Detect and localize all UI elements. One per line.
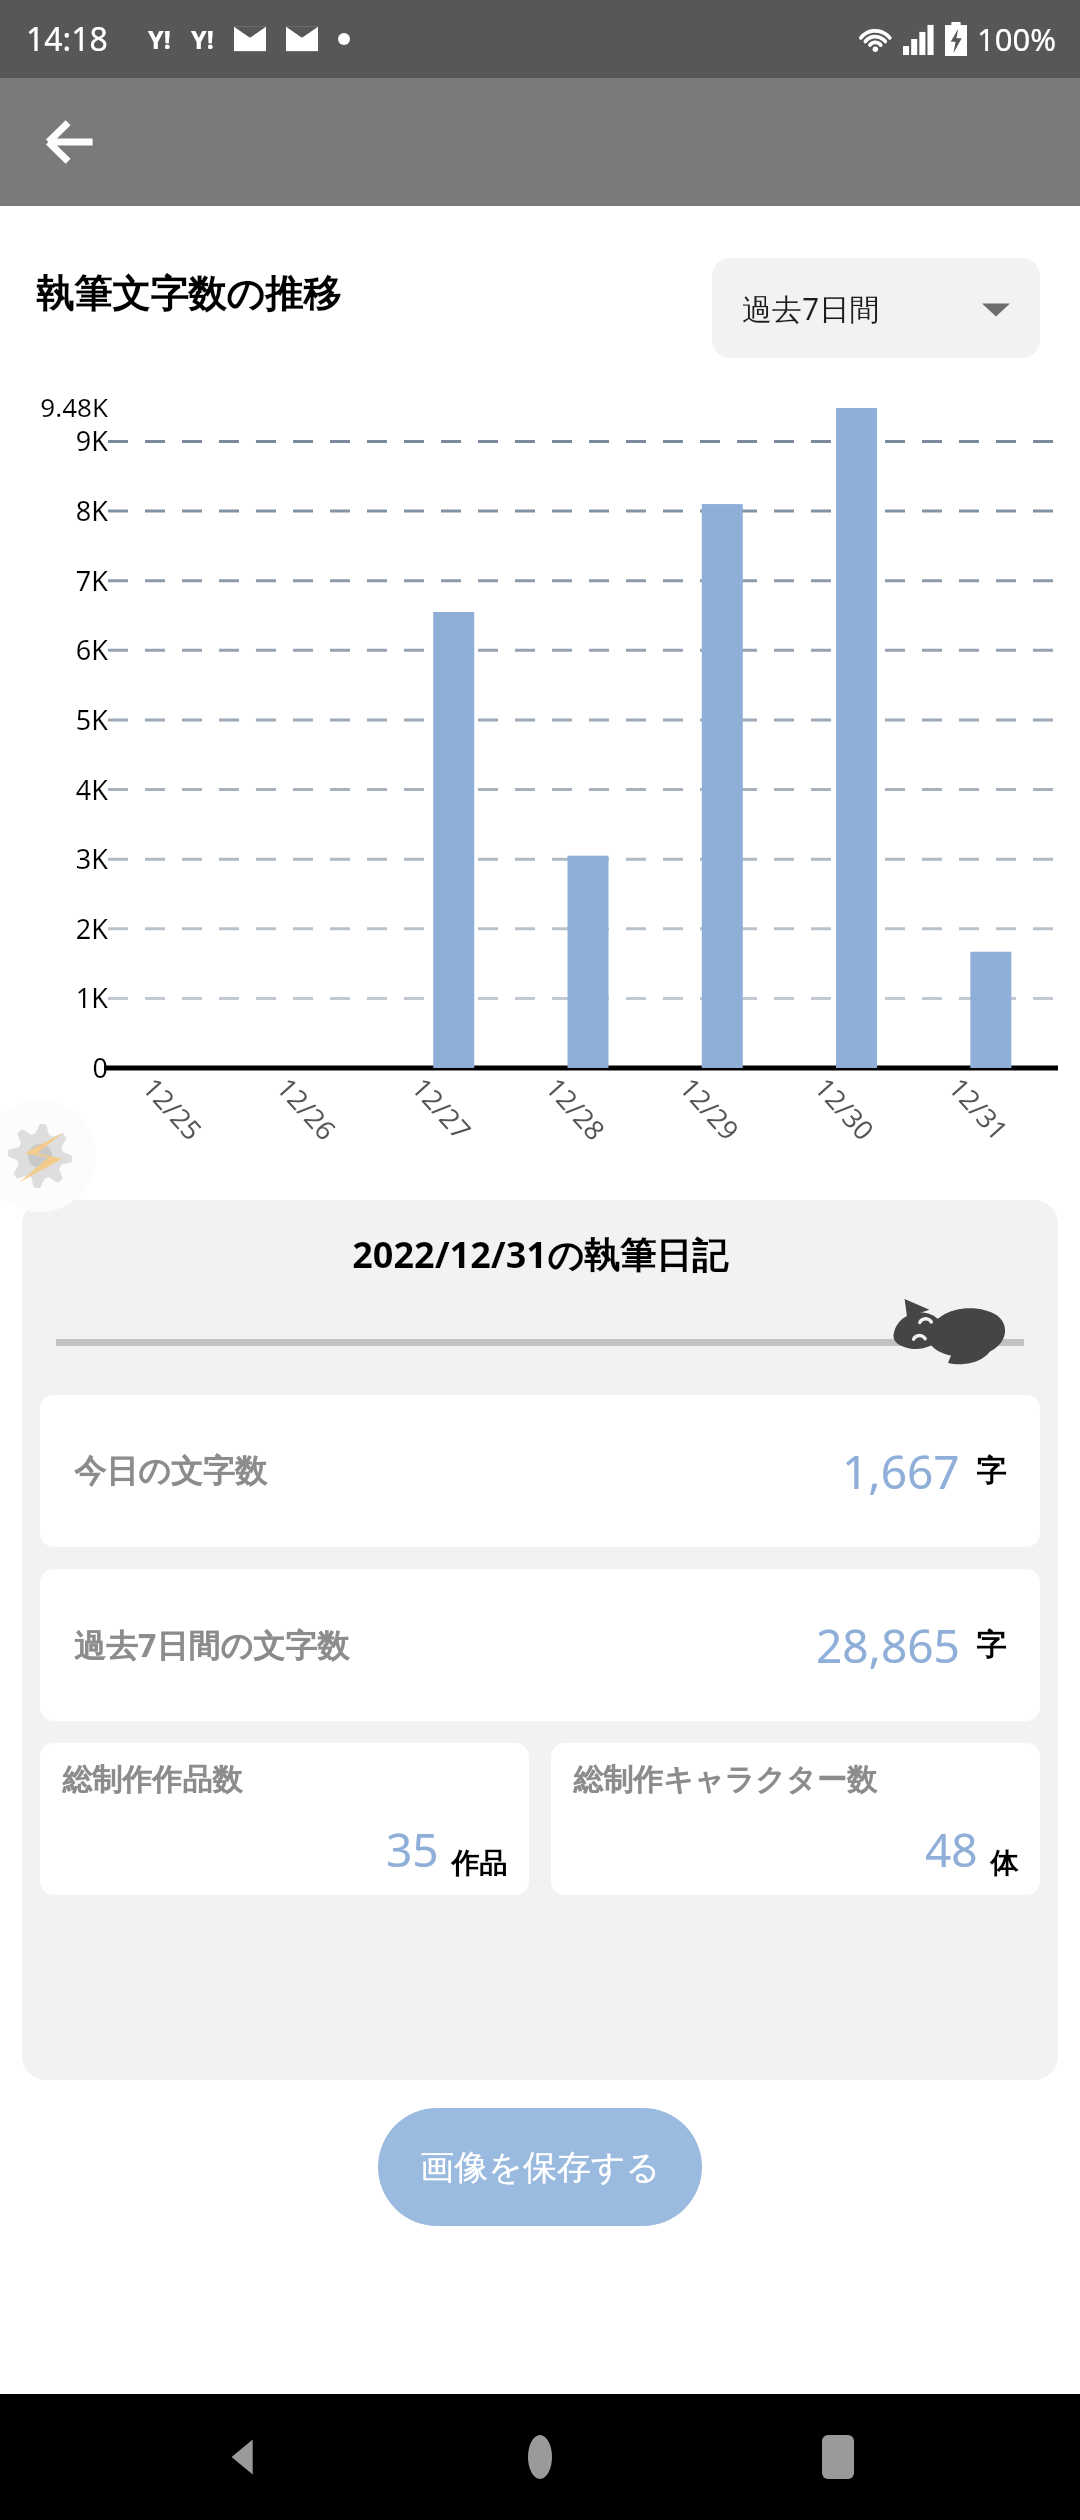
staticText: Y! (148, 22, 171, 56)
staticText: 6K (14, 631, 108, 668)
staticText: 1,667 (842, 1440, 960, 1503)
staticText: 12/29 (672, 1069, 748, 1148)
staticText: 執筆文字数の推移 (36, 270, 341, 318)
button[interactable]: 過去7日間の文字数 (40, 1569, 1040, 1721)
staticText: 1K (14, 979, 108, 1016)
staticText: 48 (925, 1818, 978, 1881)
button[interactable]: Home (485, 2402, 595, 2512)
staticText: 12/27 (404, 1069, 480, 1148)
button[interactable]: 総制作作品数 (40, 1743, 529, 1895)
staticText: 画像を保存する (420, 2146, 661, 2189)
staticText: 12/30 (807, 1069, 883, 1148)
staticText: 作品 (451, 1846, 507, 1881)
staticText: 字 (976, 1452, 1006, 1490)
staticText: 14:18 (26, 17, 108, 61)
staticText: 0 (14, 1049, 108, 1086)
button[interactable]: 総制作キャラクター数 (551, 1743, 1040, 1895)
button[interactable]: 画像を保存する (378, 2108, 702, 2226)
staticText: 5K (14, 701, 108, 738)
staticText: 体 (990, 1846, 1018, 1881)
staticText: 12/28 (538, 1069, 614, 1148)
staticText: 総制作作品数 (62, 1761, 242, 1799)
button[interactable]: 今日の文字数 (40, 1395, 1040, 1547)
staticText: 過去7日間の文字数 (74, 1623, 350, 1667)
button[interactable]: 過去7日間 (712, 258, 1040, 358)
staticText: 3K (14, 840, 108, 877)
staticText: 7K (14, 562, 108, 599)
staticText: 12/26 (269, 1069, 345, 1148)
staticText: 4K (14, 771, 108, 808)
staticText: 12/31 (941, 1069, 1017, 1148)
staticText: Y! (191, 22, 214, 56)
staticText: 28,865 (816, 1614, 960, 1677)
staticText: 8K (14, 492, 108, 529)
staticText: 今日の文字数 (74, 1451, 267, 1491)
staticText: 字 (976, 1626, 1006, 1664)
staticText: 35 (386, 1818, 439, 1881)
button[interactable]: Back (26, 98, 114, 186)
staticText: 過去7日間 (742, 288, 880, 329)
button[interactable]: Shortcut (0, 1100, 96, 1212)
staticText: 総制作キャラクター数 (573, 1761, 877, 1799)
staticText: 2022/12/31の執筆日記 (40, 1230, 1040, 1279)
button[interactable]: Back (188, 2402, 298, 2512)
button[interactable]: Recents (783, 2402, 893, 2512)
staticText: 9K (14, 422, 108, 459)
staticText: 9.48K (14, 389, 108, 424)
staticText: 2K (14, 910, 108, 947)
staticText: 100% (977, 18, 1056, 60)
staticText: 12/25 (135, 1069, 211, 1148)
